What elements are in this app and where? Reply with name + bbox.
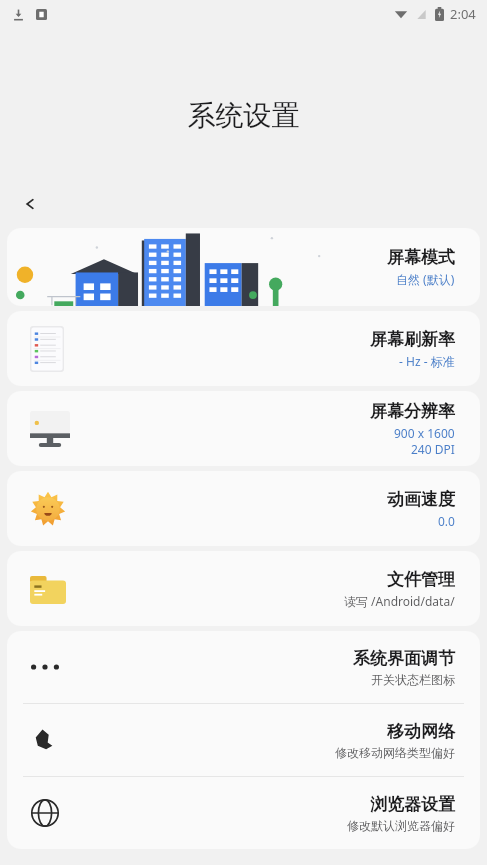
- staticText: 屏幕模式: [387, 247, 455, 268]
- staticText: 修改默认浏览器偏好: [347, 818, 455, 833]
- button[interactable]: 屏幕分辨率: [7, 391, 480, 466]
- staticText: 自然 (默认): [396, 271, 455, 287]
- staticText: 开关状态栏图标: [371, 672, 455, 687]
- button[interactable]: System UI tuner: [7, 631, 480, 703]
- staticText: 读写 /Android/data/: [344, 593, 455, 609]
- staticText: 900 x 1600: [394, 425, 455, 441]
- button[interactable]: 屏幕刷新率: [7, 311, 480, 386]
- staticText: 文件管理: [387, 569, 455, 590]
- other: Mobile network: [30, 727, 56, 753]
- button[interactable]: 文件管理: [7, 551, 480, 626]
- staticText: 移动网络: [387, 721, 455, 742]
- staticText: 240 DPI: [411, 441, 455, 457]
- staticText: 修改移动网络类型偏好: [335, 745, 455, 760]
- button[interactable]: Back: [16, 190, 44, 218]
- staticText: 浏览器设置: [370, 794, 455, 815]
- staticText: 系统设置: [0, 98, 487, 133]
- staticText: 屏幕分辨率: [370, 401, 455, 422]
- other: Browser settings: [30, 798, 60, 828]
- button[interactable]: Browser settings: [7, 777, 480, 849]
- staticText: 2:04: [450, 5, 476, 23]
- button[interactable]: Mobile network: [7, 704, 480, 776]
- other: System UI tuner: [30, 662, 60, 672]
- button[interactable]: 屏幕模式: [7, 228, 480, 306]
- staticText: - Hz - 标准: [399, 353, 455, 369]
- staticText: 屏幕刷新率: [370, 329, 455, 350]
- staticText: 0.0: [438, 513, 455, 529]
- staticText: 系统界面调节: [353, 648, 455, 669]
- staticText: 动画速度: [387, 489, 455, 510]
- button[interactable]: 动画速度: [7, 471, 480, 546]
